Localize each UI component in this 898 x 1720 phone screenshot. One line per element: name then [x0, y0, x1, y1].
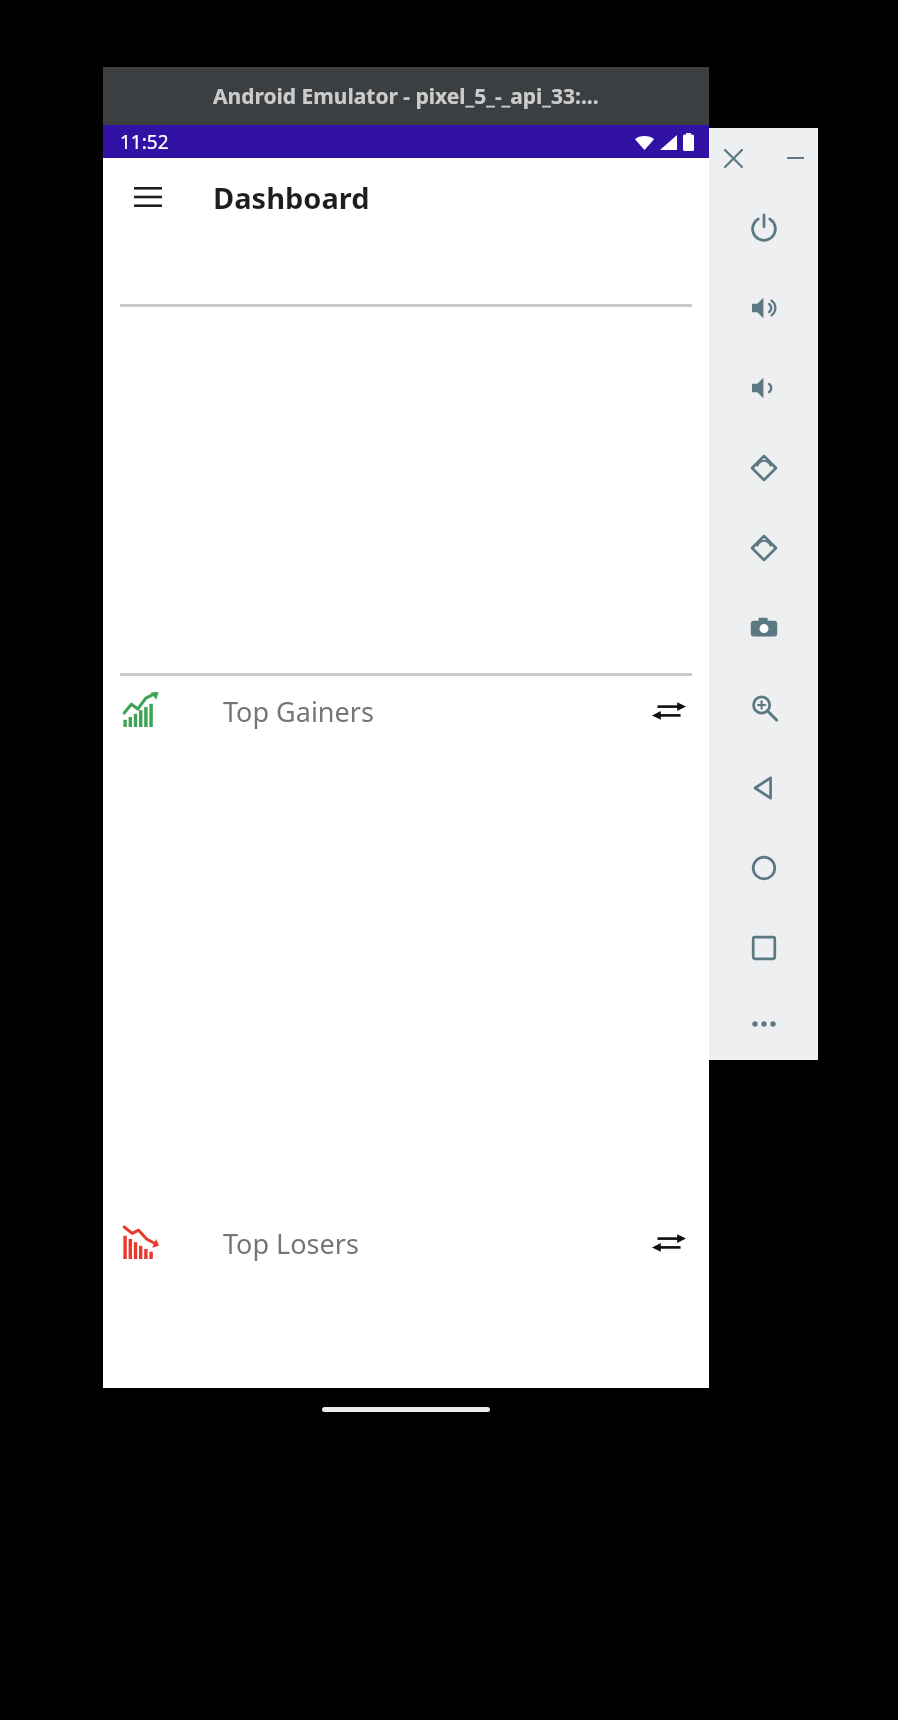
- button[interactable]: Volume up: [709, 268, 818, 348]
- button[interactable]: Screenshot: [709, 588, 818, 668]
- button[interactable]: Swap Top Losers: [647, 1221, 691, 1265]
- button[interactable]: Top Gainers: [103, 676, 709, 746]
- button[interactable]: More: [709, 988, 818, 1060]
- button[interactable]: Overview: [709, 908, 818, 988]
- button[interactable]: Rotate right: [709, 508, 818, 588]
- button[interactable]: Zoom: [709, 668, 818, 748]
- staticText: Top Losers: [223, 1225, 359, 1262]
- staticText: Top Gainers: [223, 693, 374, 730]
- button[interactable]: Power: [709, 188, 818, 268]
- button[interactable]: Volume down: [709, 348, 818, 428]
- button[interactable]: Home: [709, 828, 818, 908]
- button[interactable]: Minimize: [778, 141, 812, 175]
- staticText: Dashboard: [213, 178, 370, 217]
- button[interactable]: Back: [709, 748, 818, 828]
- button[interactable]: Close: [716, 141, 750, 175]
- button[interactable]: Swap Top Gainers: [647, 689, 691, 733]
- staticText: Android Emulator - pixel_5_-_api_33:...: [213, 82, 599, 111]
- staticText: 11:52: [120, 129, 169, 155]
- button[interactable]: Top Losers: [103, 1208, 709, 1278]
- button[interactable]: Open navigation menu: [125, 174, 171, 220]
- button[interactable]: Rotate left: [709, 428, 818, 508]
